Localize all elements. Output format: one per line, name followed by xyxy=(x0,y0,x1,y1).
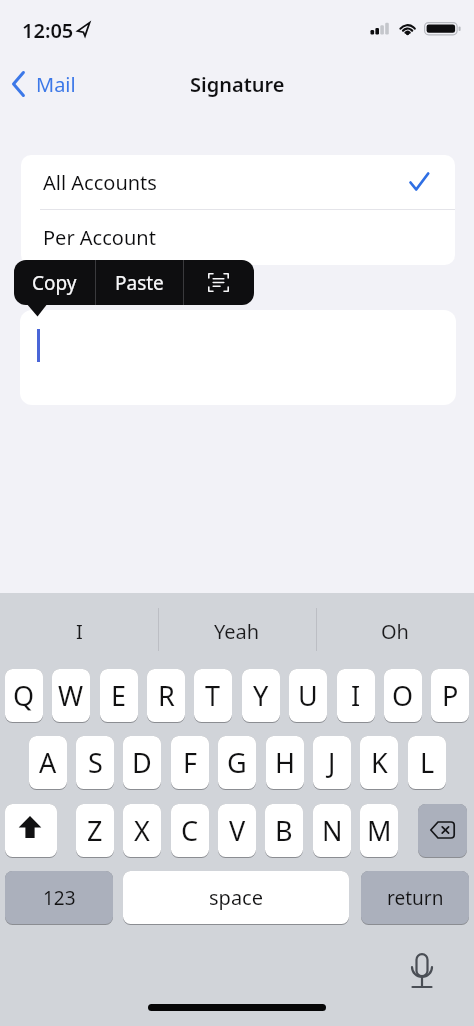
staticText: 123 xyxy=(43,885,76,911)
button[interactable]: F xyxy=(171,736,209,789)
staticText: U xyxy=(298,677,318,714)
staticText: Per Account xyxy=(43,224,156,251)
staticText: X xyxy=(134,812,150,849)
staticText: I xyxy=(351,677,361,714)
staticText: Z xyxy=(87,812,103,849)
button[interactable] xyxy=(402,948,442,996)
button[interactable]: W xyxy=(52,669,90,722)
button[interactable]: Z xyxy=(76,804,114,857)
button[interactable]: L xyxy=(408,736,446,789)
staticText: P xyxy=(442,677,459,714)
staticText: N xyxy=(322,812,343,849)
staticText: I xyxy=(76,618,83,645)
button[interactable]: E xyxy=(100,669,138,722)
button[interactable]: Mail xyxy=(6,66,84,102)
button[interactable] xyxy=(418,804,467,857)
button[interactable]: K xyxy=(360,736,398,789)
staticText: 12:05 xyxy=(22,17,74,43)
staticText: Paste xyxy=(115,270,164,296)
staticText: Copy xyxy=(32,270,77,296)
button[interactable]: Q xyxy=(5,669,43,722)
button[interactable]: N xyxy=(313,804,351,857)
button[interactable] xyxy=(20,310,456,405)
button[interactable]: space xyxy=(123,871,349,924)
staticText: Y xyxy=(253,677,269,714)
button[interactable]: return xyxy=(361,871,469,924)
button[interactable]: C xyxy=(171,804,209,857)
staticText: R xyxy=(158,677,175,714)
button[interactable]: X xyxy=(123,804,161,857)
button[interactable]: Oh xyxy=(316,604,474,659)
staticText: J xyxy=(328,744,336,781)
button[interactable] xyxy=(21,210,455,265)
button[interactable]: R xyxy=(147,669,185,722)
button[interactable]: S xyxy=(76,736,114,789)
button[interactable]: U xyxy=(289,669,327,722)
button[interactable]: J xyxy=(313,736,351,789)
button[interactable]: Y xyxy=(242,669,280,722)
staticText: Oh xyxy=(381,618,409,645)
staticText: space xyxy=(209,884,263,911)
button[interactable] xyxy=(5,804,57,857)
staticText: O xyxy=(392,677,414,714)
button[interactable]: T xyxy=(194,669,232,722)
staticText: return xyxy=(387,885,444,911)
button[interactable]: I xyxy=(0,604,158,659)
button[interactable]: M xyxy=(360,804,398,857)
button[interactable] xyxy=(21,155,455,210)
staticText: V xyxy=(229,812,246,849)
button[interactable]: B xyxy=(265,804,303,857)
button[interactable]: D xyxy=(123,736,161,789)
button[interactable]: H xyxy=(266,736,304,789)
button[interactable]: Copy xyxy=(14,260,95,305)
staticText: Signature xyxy=(190,71,285,97)
button[interactable]: G xyxy=(218,736,256,789)
staticText: T xyxy=(205,677,221,714)
staticText: G xyxy=(227,744,247,781)
staticText: Mail xyxy=(36,71,76,97)
staticText: S xyxy=(88,744,103,781)
staticText: All Accounts xyxy=(43,169,157,196)
button[interactable]: V xyxy=(218,804,256,857)
staticText: H xyxy=(275,744,296,781)
staticText: W xyxy=(58,677,84,714)
staticText: E xyxy=(111,677,127,714)
button[interactable]: A xyxy=(29,736,67,789)
button[interactable]: 123 xyxy=(5,871,113,924)
button[interactable]: O xyxy=(384,669,422,722)
staticText: A xyxy=(39,744,57,781)
staticText: Yeah xyxy=(214,618,260,645)
staticText: L xyxy=(420,744,435,781)
staticText: C xyxy=(181,812,199,849)
button[interactable]: I xyxy=(337,669,375,722)
staticText: M xyxy=(367,812,392,849)
staticText: B xyxy=(275,812,293,849)
button[interactable]: P xyxy=(431,669,469,722)
staticText: D xyxy=(132,744,152,781)
button[interactable]: Paste xyxy=(95,260,184,305)
staticText: Q xyxy=(13,677,35,714)
staticText: K xyxy=(371,744,388,781)
button[interactable]: Yeah xyxy=(158,604,316,659)
button[interactable] xyxy=(183,260,254,305)
staticText: F xyxy=(183,744,198,781)
